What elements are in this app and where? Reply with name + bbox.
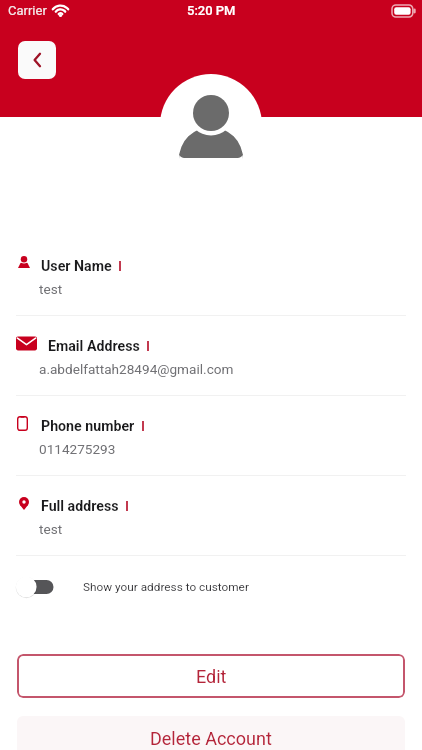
button[interactable]: Edit <box>17 654 405 698</box>
staticText: test <box>39 521 63 537</box>
button[interactable]: Show your address to customer toggle <box>16 575 54 599</box>
staticText: Show your address to customer <box>83 580 249 594</box>
staticText: Carrier <box>8 3 47 18</box>
button[interactable]: Email Address <box>0 328 422 408</box>
button[interactable]: User Name <box>0 248 422 328</box>
button[interactable]: Full address <box>0 488 422 568</box>
staticText: a.abdelfattah28494@gmail.com <box>39 361 234 377</box>
button[interactable]: Delete Account <box>17 716 405 750</box>
button[interactable]: Back <box>18 41 56 79</box>
staticText: test <box>39 281 63 297</box>
button[interactable]: Phone number <box>0 408 422 488</box>
staticText: Delete Account <box>150 728 272 749</box>
staticText: Email Address <box>48 338 140 355</box>
staticText: Edit <box>196 666 227 687</box>
staticText: 5:20 PM <box>187 3 236 18</box>
staticText: Phone number <box>41 418 135 435</box>
staticText: 0114275293 <box>39 441 116 457</box>
other: Battery <box>392 5 416 17</box>
staticText: Full address <box>41 498 119 515</box>
staticText: User Name <box>41 258 112 275</box>
